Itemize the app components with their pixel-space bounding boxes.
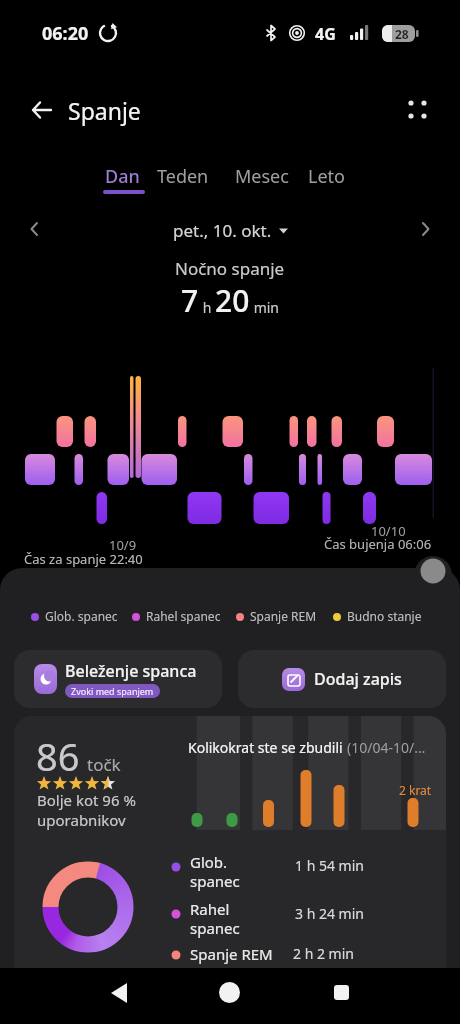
staticText: spanec bbox=[190, 871, 240, 891]
button[interactable] bbox=[30, 98, 54, 122]
staticText: 10/10 bbox=[371, 522, 406, 540]
staticText: Dan bbox=[105, 164, 140, 189]
staticText: točk bbox=[87, 753, 121, 776]
staticText: 10/9 bbox=[109, 536, 137, 554]
button[interactable] bbox=[334, 985, 349, 1000]
staticText: Spanje REM bbox=[190, 944, 273, 964]
staticText: Čas bujenja 06:06 bbox=[324, 535, 432, 553]
button[interactable]: Beleženje spanca bbox=[14, 650, 222, 708]
staticText: 2 krat bbox=[399, 782, 432, 798]
staticText: Spanje bbox=[68, 95, 141, 126]
staticText: Beleženje spanca bbox=[65, 660, 197, 682]
button[interactable]: Mesec bbox=[235, 164, 289, 189]
staticText: Rahel spanec bbox=[146, 608, 221, 624]
button[interactable]: Teden bbox=[157, 164, 209, 189]
button[interactable] bbox=[26, 220, 44, 238]
staticText: 1 h 54 min bbox=[295, 856, 364, 875]
button[interactable] bbox=[105, 978, 135, 1008]
staticText: 86 bbox=[36, 730, 80, 782]
staticText: Rahel bbox=[190, 899, 230, 919]
staticText: h bbox=[199, 298, 215, 317]
button[interactable] bbox=[416, 220, 434, 238]
staticText: 2 h 2 min bbox=[293, 944, 354, 963]
staticText: Mesec bbox=[235, 164, 289, 189]
staticText: pet., 10. okt. bbox=[173, 219, 272, 242]
staticText: (10/04-10/… bbox=[347, 738, 426, 757]
staticText: 7 bbox=[181, 280, 199, 321]
staticText: Zvoki med spanjem bbox=[71, 685, 154, 697]
staticText: min bbox=[250, 298, 279, 317]
button[interactable] bbox=[219, 982, 240, 1003]
staticText: Kolikokrat ste se zbudili bbox=[188, 738, 347, 757]
staticText: Dodaj zapis bbox=[314, 668, 402, 690]
staticText: Leto bbox=[308, 164, 345, 189]
staticText: Glob. spanec bbox=[45, 608, 118, 624]
staticText: spanec bbox=[190, 918, 240, 938]
staticText: Budno stanje bbox=[347, 608, 422, 624]
staticText: 06:20 bbox=[42, 21, 89, 46]
staticText: 28 bbox=[395, 26, 409, 42]
staticText: Glob. bbox=[190, 852, 228, 872]
staticText: Spanje REM bbox=[250, 608, 317, 624]
staticText: 4G bbox=[315, 23, 336, 45]
staticText: uporabnikov bbox=[37, 810, 126, 830]
button[interactable]: Dan bbox=[105, 164, 140, 189]
button[interactable]: Dodaj zapis bbox=[238, 650, 446, 708]
button[interactable]: Leto bbox=[308, 164, 345, 189]
staticText: Čas za spanje 22:40 bbox=[24, 550, 143, 568]
staticText: Bolje kot 96 % bbox=[37, 790, 136, 810]
button[interactable]: pet., 10. okt. bbox=[0, 219, 460, 242]
staticText: 20 bbox=[215, 280, 250, 321]
button[interactable] bbox=[402, 95, 432, 125]
staticText: Nočno spanje bbox=[175, 257, 285, 280]
staticText: Teden bbox=[157, 164, 209, 189]
staticText: 3 h 24 min bbox=[295, 904, 364, 923]
